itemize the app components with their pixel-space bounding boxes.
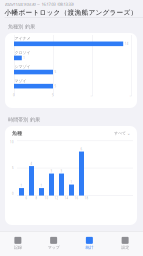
staticText: すべて: [114, 131, 126, 136]
staticText: 時間帯別 釣果: [8, 116, 40, 123]
button[interactable]: 統計: [71, 231, 107, 252]
staticText: 記録: [14, 245, 22, 250]
button[interactable]: すべて: [114, 131, 130, 136]
staticText: 12: [54, 197, 58, 200]
staticText: 10: [44, 197, 48, 200]
staticText: 魚種: [12, 130, 22, 137]
staticText: 3: [50, 169, 52, 173]
staticText: 0: [13, 93, 15, 97]
staticText: 8: [35, 197, 37, 200]
staticText: シマゾイ: [14, 64, 30, 69]
staticText: 10: [10, 141, 14, 144]
staticText: 10: [90, 93, 93, 97]
staticText: 2025/11/24 9:03:30 ～ 16:17:03 (08:13:33): [4, 1, 73, 7]
staticText: 0: [12, 192, 14, 195]
staticText: 1: [23, 56, 25, 60]
staticText: 18: [84, 197, 88, 200]
staticText: アイナメ: [14, 36, 30, 41]
staticText: 1: [40, 184, 42, 187]
staticText: マップ: [48, 245, 60, 250]
staticText: 1: [70, 180, 72, 184]
staticText: 14: [125, 42, 129, 45]
staticText: 14: [64, 197, 68, 200]
staticText: 6: [80, 147, 82, 151]
button[interactable]: 記録: [0, 231, 36, 252]
staticText: ⌄: [127, 131, 130, 135]
staticText: 16: [74, 197, 78, 200]
staticText: 1: [20, 184, 22, 187]
staticText: マゾイ: [14, 78, 26, 83]
button[interactable]: 設定: [107, 231, 143, 252]
staticText: 6: [25, 197, 27, 200]
staticText: 5: [54, 84, 56, 88]
staticText: 4: [30, 162, 32, 165]
staticText: 魚種別 釣果: [8, 23, 35, 30]
staticText: 小幡ボートロック（渡漁船アングラーズ）: [4, 8, 137, 16]
staticText: 3: [60, 169, 62, 173]
button[interactable]: マップ: [36, 231, 72, 252]
staticText: 5: [52, 93, 54, 97]
staticText: クロソイ: [14, 50, 30, 55]
staticText: 統計: [85, 245, 93, 250]
staticText: 設定: [121, 245, 129, 250]
staticText: 5: [54, 70, 56, 74]
staticText: 5: [12, 166, 14, 170]
staticText: 15: [129, 93, 132, 97]
